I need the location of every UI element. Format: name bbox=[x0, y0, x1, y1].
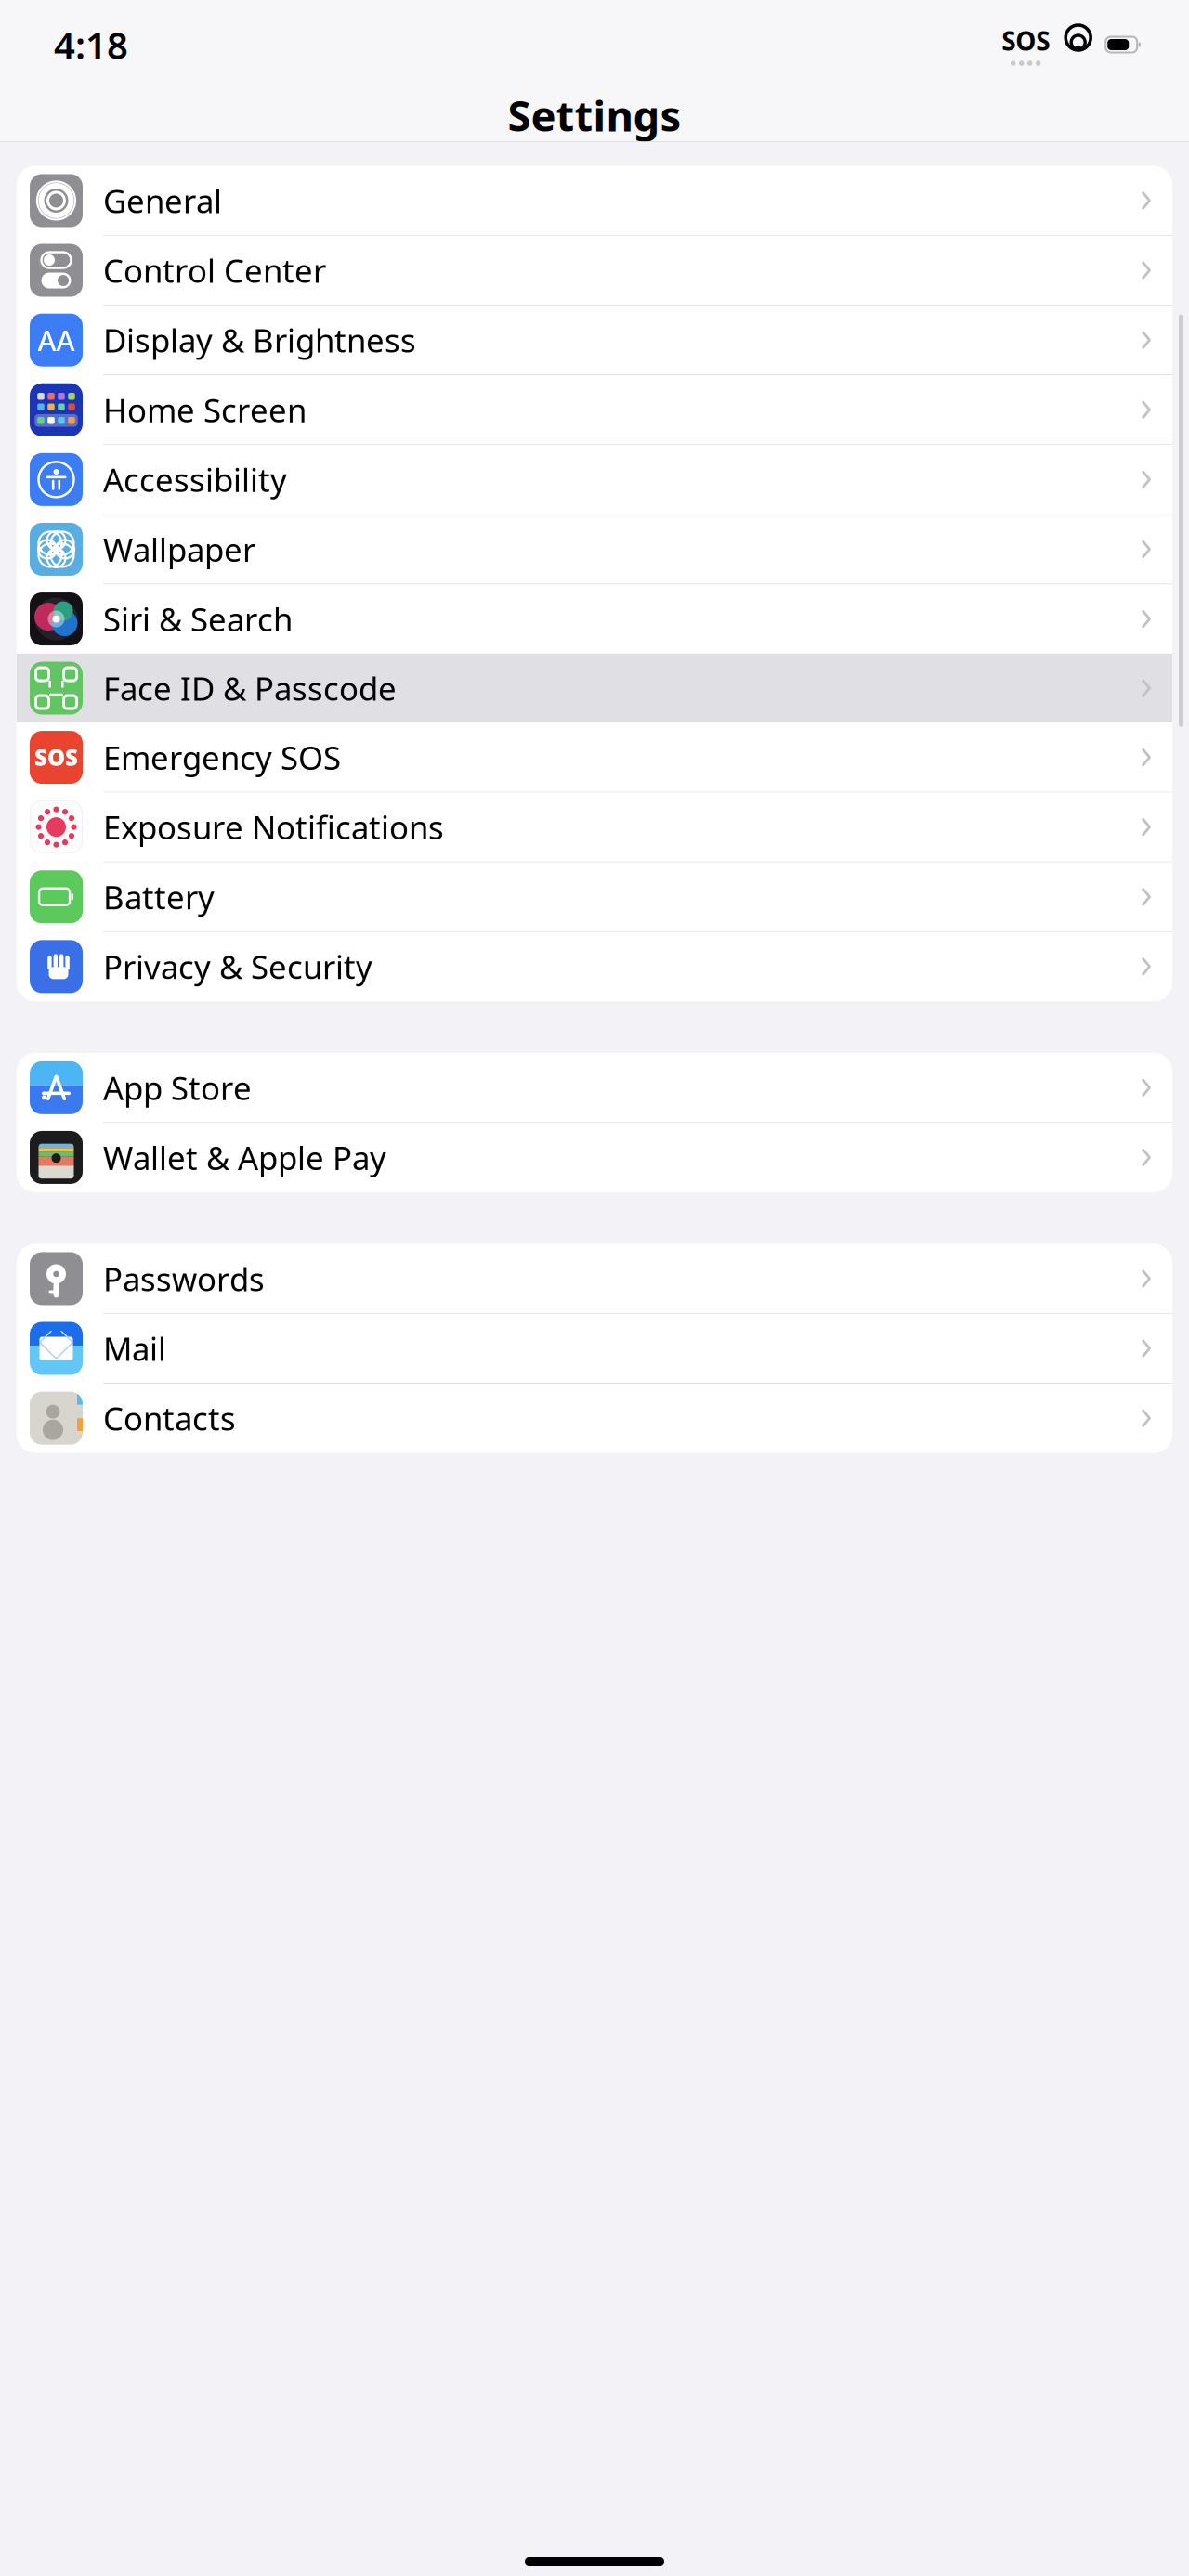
staticText: Wallpaper bbox=[103, 528, 255, 571]
button[interactable]: Contacts bbox=[17, 1384, 1172, 1453]
staticText: Emergency SOS bbox=[103, 736, 341, 779]
button[interactable]: General bbox=[17, 166, 1172, 235]
staticText: Privacy & Security bbox=[103, 945, 372, 988]
button[interactable]: Accessibility bbox=[17, 445, 1172, 514]
button[interactable]: Privacy & Security bbox=[17, 932, 1172, 1001]
button[interactable]: AA bbox=[17, 305, 1172, 375]
staticText: SOS bbox=[34, 743, 78, 772]
button[interactable]: Face ID & Passcode bbox=[17, 654, 1172, 723]
staticText: Control Center bbox=[103, 249, 326, 292]
staticText: Contacts bbox=[103, 1397, 236, 1439]
staticText: SOS bbox=[1002, 23, 1050, 58]
staticText: Wallet & Apple Pay bbox=[103, 1136, 386, 1179]
staticText: Display & Brightness bbox=[103, 319, 416, 361]
button[interactable]: Wallet & Apple Pay bbox=[17, 1123, 1172, 1192]
button[interactable]: Passwords bbox=[17, 1244, 1172, 1313]
staticText: Battery bbox=[103, 875, 215, 918]
button[interactable]: SOS bbox=[17, 723, 1172, 792]
button[interactable]: Siri & Search bbox=[17, 584, 1172, 654]
staticText: AA bbox=[38, 321, 75, 359]
button[interactable]: App Store bbox=[17, 1053, 1172, 1122]
staticText: App Store bbox=[103, 1066, 252, 1109]
button[interactable]: Wallpaper bbox=[17, 515, 1172, 584]
button[interactable]: Mail bbox=[17, 1314, 1172, 1383]
staticText: Siri & Search bbox=[103, 598, 293, 640]
staticText: Settings bbox=[508, 87, 681, 143]
staticText: Face ID & Passcode bbox=[103, 667, 397, 709]
staticText: General bbox=[103, 179, 222, 222]
button[interactable]: Control Center bbox=[17, 236, 1172, 305]
staticText: Mail bbox=[103, 1327, 166, 1370]
button[interactable]: Exposure Notifications bbox=[17, 792, 1172, 862]
staticText: Passwords bbox=[103, 1257, 265, 1300]
staticText: 4:18 bbox=[54, 20, 128, 69]
staticText: Home Screen bbox=[103, 388, 307, 431]
button[interactable]: Home Screen bbox=[17, 375, 1172, 444]
staticText: Exposure Notifications bbox=[103, 806, 444, 848]
button[interactable]: Battery bbox=[17, 862, 1172, 931]
staticText: Accessibility bbox=[103, 458, 287, 501]
